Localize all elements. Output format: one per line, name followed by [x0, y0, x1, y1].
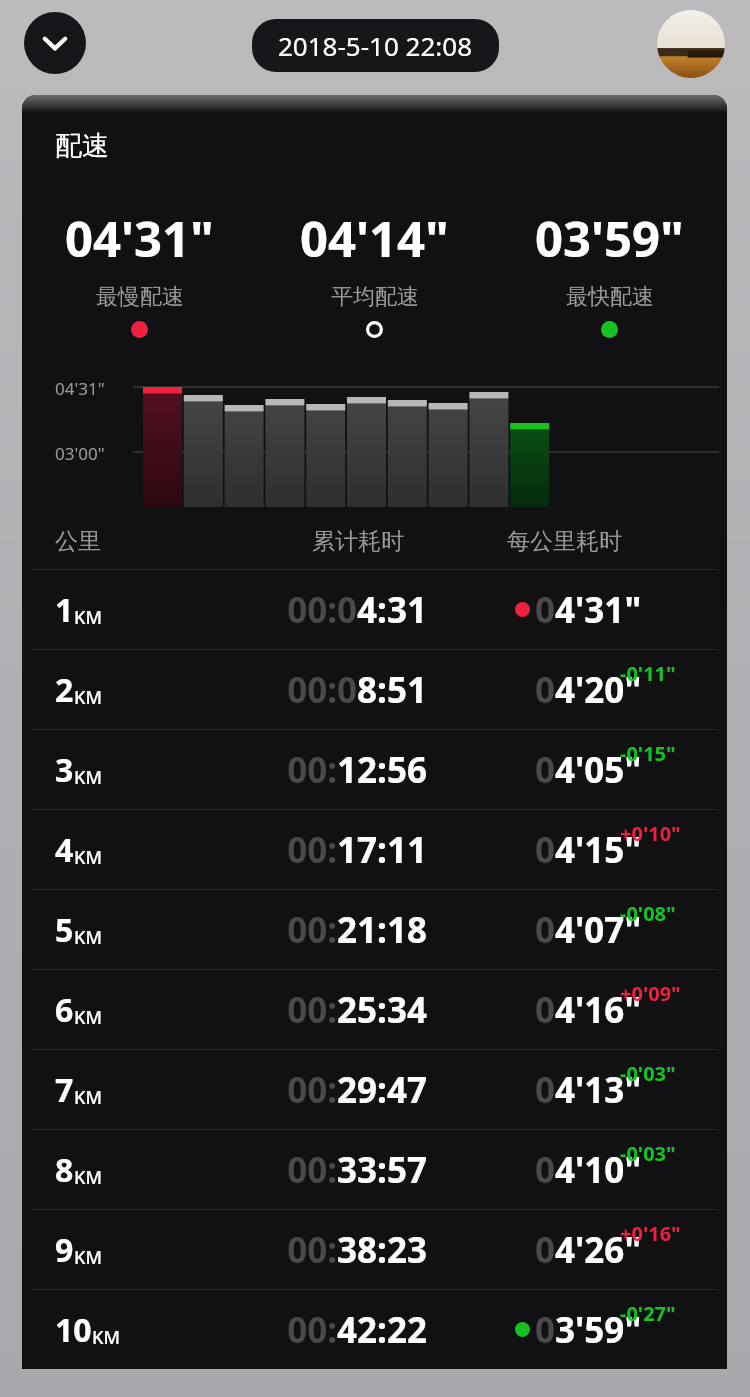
- staticText: 00:08:51: [187, 666, 427, 714]
- staticText: 00:21:18: [187, 906, 427, 954]
- staticText: 00:12:56: [187, 746, 427, 794]
- button[interactable]: 4: [22, 809, 727, 889]
- staticText: KM: [92, 1325, 120, 1350]
- staticText: 03'59": [535, 1306, 642, 1354]
- staticText: 04'14": [300, 205, 449, 272]
- staticText: +0'16": [620, 1220, 681, 1247]
- staticText: -0'03": [620, 1060, 676, 1087]
- staticText: -0'27": [620, 1300, 676, 1327]
- staticText: 10: [55, 1308, 92, 1352]
- button[interactable]: Collapse: [24, 12, 86, 74]
- button[interactable]: 2018-5-10 22:08: [252, 19, 499, 72]
- button[interactable]: 1: [22, 569, 727, 649]
- staticText: 00:33:57: [187, 1146, 427, 1194]
- staticText: 04'31": [65, 205, 214, 272]
- staticText: 1: [55, 588, 74, 632]
- staticText: 04'13": [535, 1066, 642, 1114]
- staticText: 03'59": [535, 205, 684, 272]
- button[interactable]: 6: [22, 969, 727, 1049]
- staticText: -0'15": [620, 740, 676, 767]
- staticText: -0'03": [620, 1140, 676, 1167]
- staticText: -0'11": [620, 660, 676, 687]
- staticText: 累计耗时: [312, 527, 404, 556]
- staticText: 公里: [55, 527, 101, 556]
- staticText: 5: [55, 908, 74, 952]
- staticText: 04'15": [535, 826, 642, 874]
- button[interactable]: 5: [22, 889, 727, 969]
- staticText: 00:29:47: [187, 1066, 427, 1114]
- staticText: 2: [55, 668, 74, 712]
- staticText: 最慢配速: [96, 283, 184, 311]
- staticText: 04'31": [55, 377, 105, 400]
- staticText: 03'00": [55, 442, 105, 465]
- staticText: 00:42:22: [187, 1306, 427, 1354]
- staticText: KM: [74, 605, 102, 630]
- staticText: 04'20": [535, 666, 642, 714]
- staticText: 04'16": [535, 986, 642, 1034]
- staticText: 2018-5-10 22:08: [278, 28, 473, 63]
- staticText: KM: [74, 1245, 102, 1270]
- button[interactable]: 10: [22, 1289, 727, 1369]
- staticText: 00:04:31: [187, 586, 427, 634]
- staticText: 3: [55, 748, 74, 792]
- staticText: 8: [55, 1148, 74, 1192]
- staticText: 04'05": [535, 746, 642, 794]
- staticText: 04'07": [535, 906, 642, 954]
- button[interactable]: 2: [22, 649, 727, 729]
- staticText: 每公里耗时: [507, 527, 622, 556]
- staticText: -0'08": [620, 900, 676, 927]
- button[interactable]: 9: [22, 1209, 727, 1289]
- staticText: 6: [55, 988, 74, 1032]
- staticText: 7: [55, 1068, 74, 1112]
- staticText: KM: [74, 1005, 102, 1030]
- button[interactable]: Profile: [657, 10, 725, 78]
- button[interactable]: 8: [22, 1129, 727, 1209]
- staticText: 00:17:11: [187, 826, 427, 874]
- staticText: 4: [55, 828, 74, 872]
- staticText: KM: [74, 1165, 102, 1190]
- staticText: KM: [74, 1085, 102, 1110]
- staticText: 平均配速: [331, 283, 419, 311]
- staticText: +0'10": [620, 820, 681, 847]
- staticText: KM: [74, 845, 102, 870]
- staticText: 9: [55, 1228, 74, 1272]
- staticText: +0'09": [620, 980, 681, 1007]
- staticText: KM: [74, 765, 102, 790]
- staticText: 00:25:34: [187, 986, 427, 1034]
- staticText: 最快配速: [566, 283, 654, 311]
- button[interactable]: 3: [22, 729, 727, 809]
- button[interactable]: 7: [22, 1049, 727, 1129]
- staticText: KM: [74, 925, 102, 950]
- staticText: 00:38:23: [187, 1226, 427, 1274]
- staticText: 04'31": [535, 586, 642, 634]
- staticText: 配速: [55, 129, 109, 163]
- staticText: KM: [74, 685, 102, 710]
- staticText: 04'10": [535, 1146, 642, 1194]
- staticText: 04'26": [535, 1226, 642, 1274]
